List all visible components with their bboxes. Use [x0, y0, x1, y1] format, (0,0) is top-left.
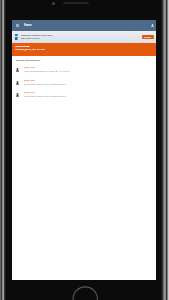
staticText: SWITCH: [144, 36, 152, 39]
button[interactable]: Open navigation menu: [13, 20, 21, 31]
button[interactable]: Medicine Evaluation Unit (MEU): [12, 31, 156, 43]
staticText: Jul 28, 2021: [24, 91, 36, 94]
button[interactable]: Jul 28, 2021: [12, 79, 156, 90]
staticText: Thursday, July 29, 2021 at 12:45: [15, 48, 45, 51]
staticText: Medicine Evaluation Unit (MEU): [21, 34, 53, 37]
button[interactable]: Your next visit: [12, 43, 156, 56]
staticText: Your next visit: [15, 45, 30, 48]
staticText: Recent Notifications: [16, 58, 41, 61]
staticText: Reminder before your appointment: [24, 94, 66, 97]
button[interactable]: Jul 28, 2021: [12, 66, 156, 77]
staticText: Jul 28, 2021: [24, 66, 36, 69]
staticText: MEU Study 2019/01: [21, 37, 40, 40]
staticText: Reminder before your appointment: [24, 82, 66, 85]
staticText: Your appointment is today at 12:45 PM.: [24, 69, 71, 72]
staticText: Home: [24, 23, 32, 27]
button[interactable]: Account: [148, 20, 156, 31]
button[interactable]: SWITCH: [142, 35, 154, 39]
button[interactable]: Jul 28, 2021: [12, 91, 156, 102]
staticText: Jul 28, 2021: [24, 79, 36, 82]
